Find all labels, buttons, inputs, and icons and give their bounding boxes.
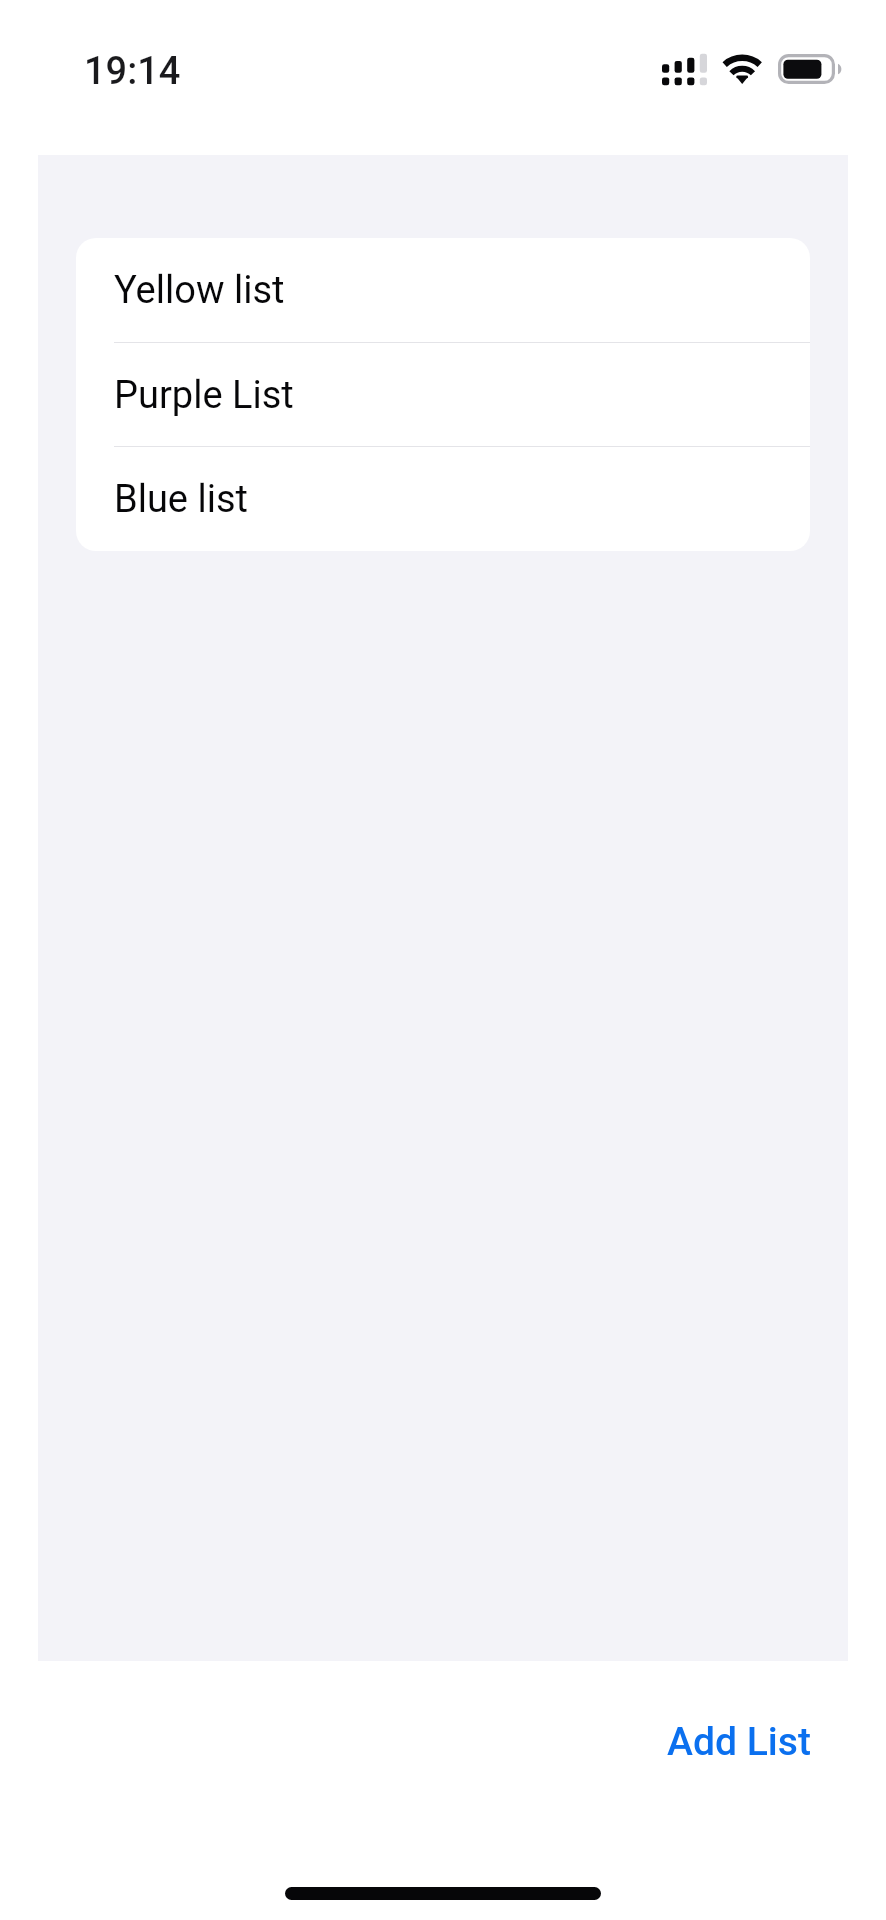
staticText: 19:14 [84, 49, 181, 94]
other: Cellular signal strength [662, 53, 708, 86]
other: Wi-Fi [722, 54, 766, 88]
button[interactable]: Add List [643, 1701, 835, 1783]
staticText: Blue list [114, 477, 248, 522]
button[interactable]: Purple List [76, 343, 810, 447]
staticText: Purple List [114, 373, 294, 418]
staticText: Add List [667, 1719, 811, 1765]
button[interactable]: Yellow list [76, 238, 810, 343]
button[interactable]: Blue list [76, 447, 810, 551]
other: Battery [778, 54, 842, 85]
staticText: Yellow list [114, 268, 285, 313]
